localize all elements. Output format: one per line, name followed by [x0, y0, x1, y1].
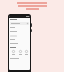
button[interactable]: [10, 22, 29, 25]
other: Volume: [31, 23, 32, 27]
button[interactable]: Option 3: [23, 50, 29, 55]
button[interactable]: Option 1: [10, 50, 16, 55]
other: Power: [31, 29, 32, 32]
button[interactable]: Option 2: [17, 50, 23, 55]
